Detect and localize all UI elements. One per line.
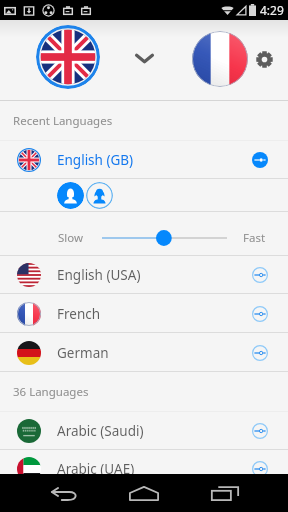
button[interactable]: Arabic (UAE) xyxy=(0,450,288,488)
button[interactable]: German xyxy=(0,333,288,372)
button[interactable]: Female voice xyxy=(86,182,113,209)
staticText: 4:29 xyxy=(260,2,284,18)
button[interactable]: Target language French xyxy=(192,31,248,87)
button[interactable]: Source language English (GB) xyxy=(36,25,100,89)
staticText: 36 Languages xyxy=(13,384,89,400)
button[interactable]: Swap languages xyxy=(128,42,160,74)
button[interactable]: French xyxy=(0,294,288,333)
staticText: Arabic (Saudi) xyxy=(57,422,144,440)
button[interactable]: Back xyxy=(46,474,82,512)
staticText: Fast xyxy=(243,230,266,246)
staticText: Arabic (UAE) xyxy=(57,460,135,478)
staticText: Slow xyxy=(58,230,84,246)
button[interactable]: English (USA) xyxy=(0,256,288,294)
staticText: German xyxy=(57,344,109,362)
button[interactable]: Home xyxy=(126,474,162,512)
button[interactable]: Speech speed xyxy=(102,228,227,248)
button[interactable]: Recent apps xyxy=(207,474,243,512)
staticText: English (GB) xyxy=(57,151,134,169)
button[interactable]: English (GB) xyxy=(0,141,288,179)
staticText: Recent Languages xyxy=(13,113,113,129)
staticText: English (USA) xyxy=(57,266,141,284)
button[interactable]: Arabic (Saudi) xyxy=(0,412,288,450)
staticText: French xyxy=(57,305,101,323)
button[interactable]: Male voice xyxy=(57,182,84,209)
button[interactable]: Settings xyxy=(251,46,277,72)
